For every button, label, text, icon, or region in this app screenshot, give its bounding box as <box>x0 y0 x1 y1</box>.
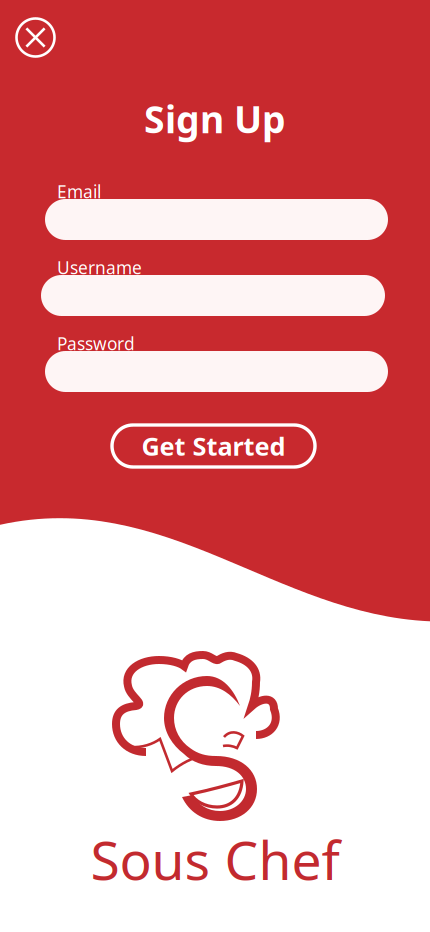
staticText: Get Started <box>141 429 285 463</box>
button[interactable]: Close <box>15 17 56 58</box>
staticText: Password <box>57 332 135 355</box>
staticText: Sous Chef <box>90 824 339 895</box>
staticText: Email <box>57 180 101 203</box>
staticText: Sign Up <box>144 94 286 144</box>
button[interactable]: Get Started <box>112 425 315 467</box>
staticText: Username <box>57 256 142 279</box>
